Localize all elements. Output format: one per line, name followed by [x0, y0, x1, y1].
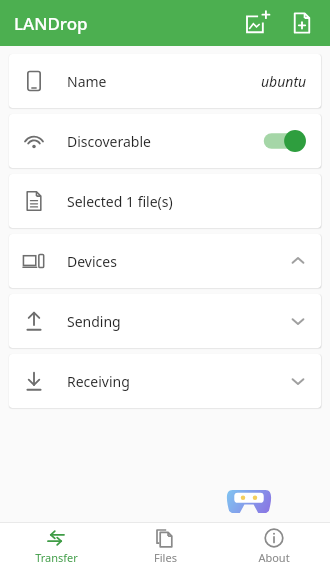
staticText: Transfer	[35, 550, 78, 565]
button[interactable]: About	[221, 523, 327, 570]
button[interactable]: Devices	[9, 234, 321, 288]
staticText: Files	[154, 550, 177, 565]
staticText: LANDrop	[14, 12, 88, 35]
staticText: Devices	[67, 252, 289, 271]
staticText: Sending	[67, 312, 289, 331]
button[interactable]: Discoverable toggle	[261, 128, 307, 154]
staticText: ubuntu	[261, 72, 307, 91]
staticText: Discoverable	[67, 132, 261, 151]
button[interactable]: Sending	[9, 294, 321, 348]
button[interactable]: Transfer	[3, 523, 109, 570]
staticText: Selected 1 file(s)	[67, 192, 307, 211]
staticText: Name	[67, 72, 261, 91]
staticText: About	[258, 550, 290, 565]
button[interactable]: Add image	[238, 3, 278, 43]
button[interactable]: Add file	[282, 3, 322, 43]
button[interactable]: Name	[9, 54, 321, 108]
button[interactable]: Receiving	[9, 354, 321, 408]
button[interactable]: Assistant	[226, 486, 272, 514]
button[interactable]: Files	[112, 523, 218, 570]
button[interactable]: Selected 1 file(s)	[9, 174, 321, 228]
button[interactable]: Discoverable	[9, 114, 321, 168]
staticText: Receiving	[67, 372, 289, 391]
